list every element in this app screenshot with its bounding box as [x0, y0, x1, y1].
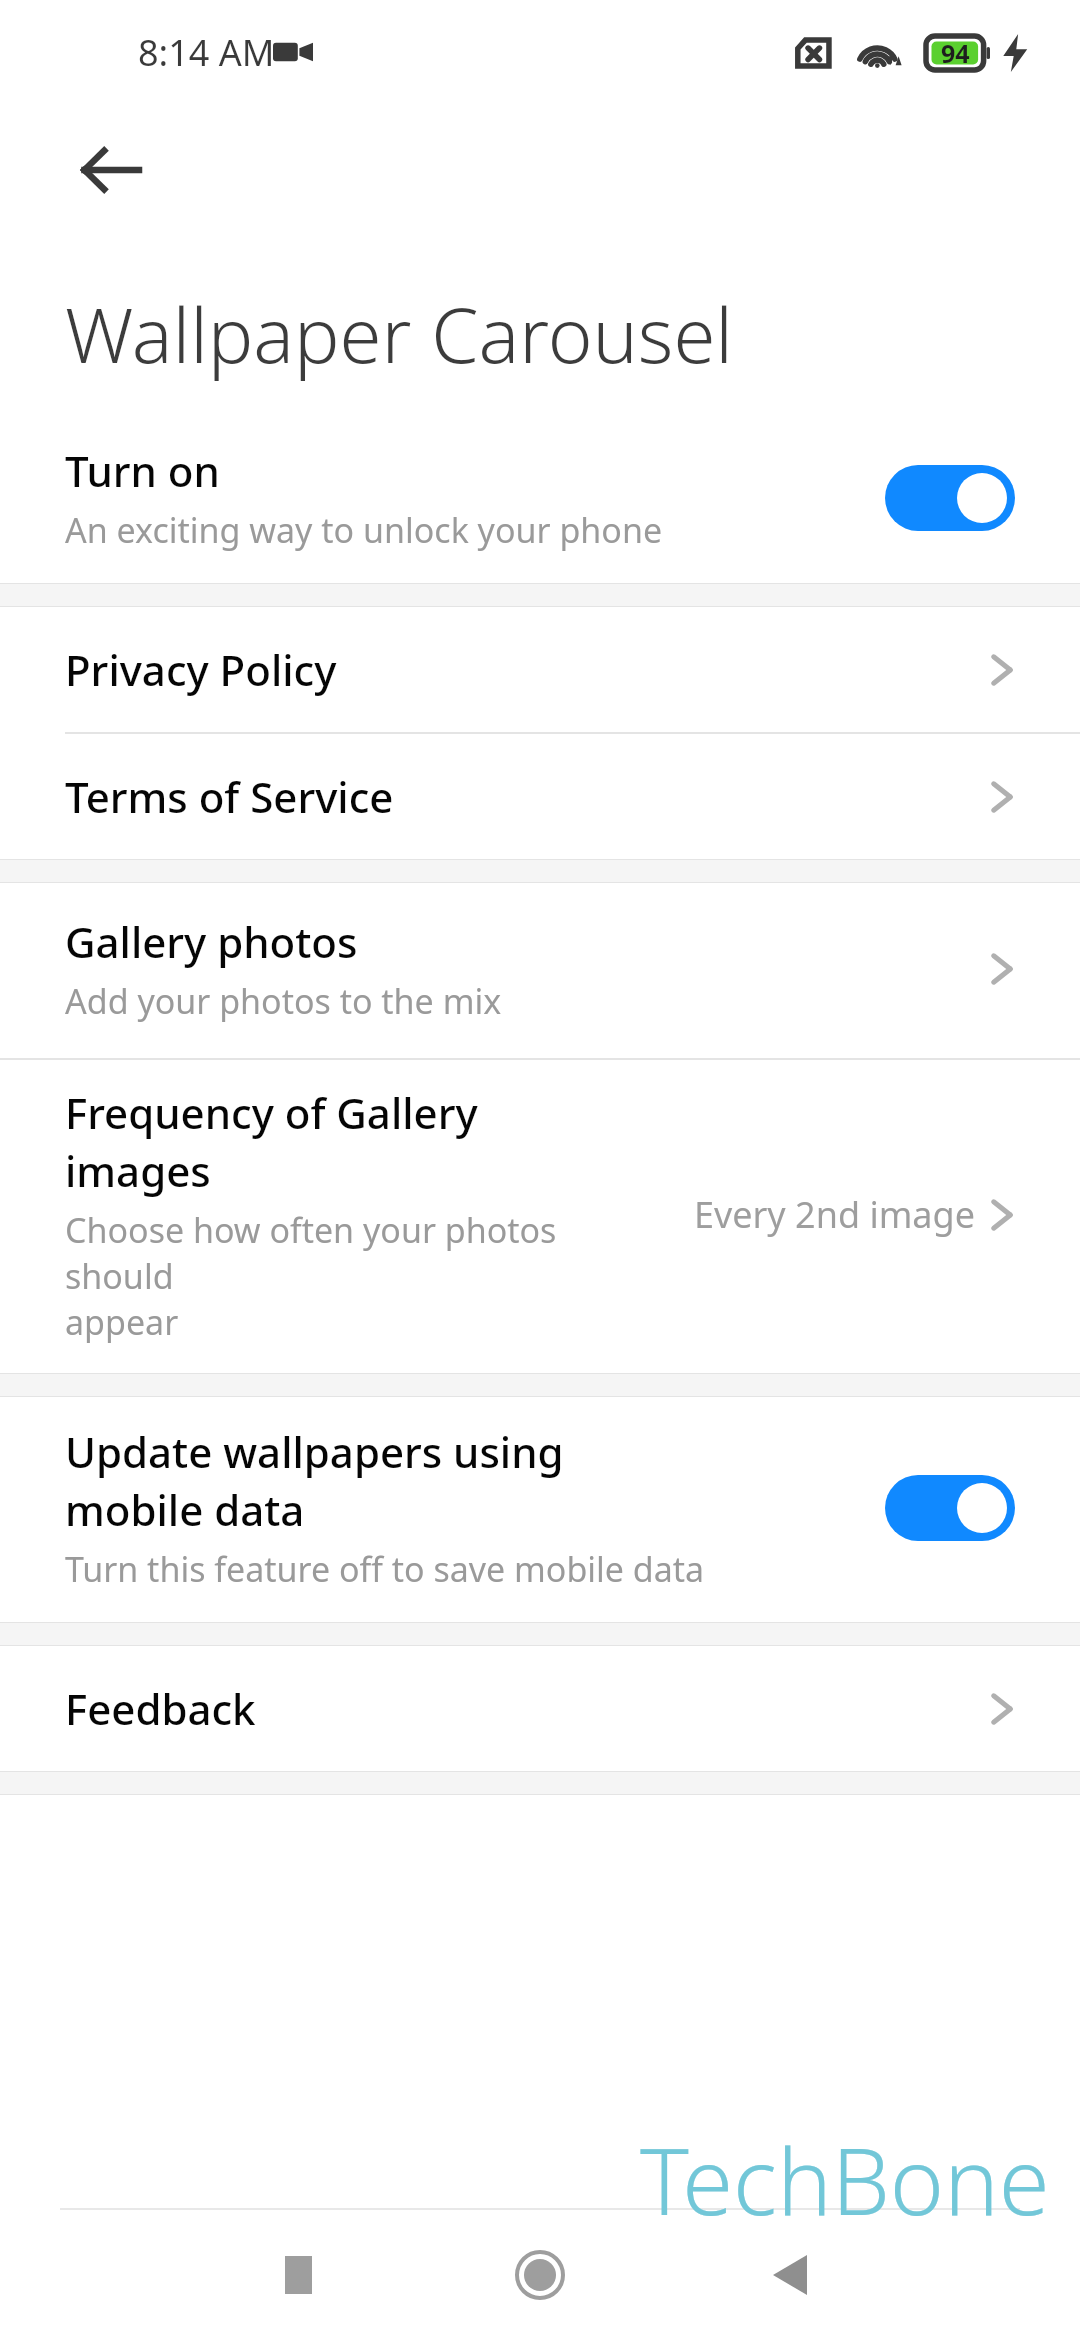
staticText: Privacy Policy [65, 641, 989, 698]
staticText: Feedback [65, 1680, 989, 1737]
staticText: Turn on [65, 442, 220, 499]
button[interactable]: Frequency of Gallery images [0, 1060, 1080, 1373]
button[interactable]: Feedback [0, 1646, 1080, 1771]
button[interactable]: Toggle [885, 465, 1015, 531]
staticText: Every 2nd image [693, 1190, 975, 1239]
button[interactable]: Gallery photos [0, 883, 1080, 1058]
staticText: Frequency of Gallery images [65, 1084, 478, 1199]
button[interactable]: Home [495, 2230, 585, 2320]
button[interactable]: Turn on [0, 420, 1080, 583]
staticText: Update wallpapers using mobile data [65, 1423, 564, 1538]
staticText: An exciting way to unlock your phone [65, 507, 663, 553]
staticText: TechBone [640, 2117, 1050, 2242]
staticText: Terms of Service [65, 768, 989, 825]
button[interactable]: Update wallpapers using mobile data [0, 1397, 1080, 1622]
button[interactable]: Back [750, 2235, 830, 2315]
staticText: Wallpaper Carousel [65, 282, 733, 386]
staticText: 94 [941, 36, 970, 70]
button[interactable]: Back [62, 122, 158, 218]
button[interactable]: Terms of Service [0, 734, 1080, 859]
button[interactable]: Privacy Policy [0, 607, 1080, 732]
button[interactable]: Toggle [885, 1475, 1015, 1541]
staticText: Turn this feature off to save mobile dat… [65, 1546, 705, 1592]
staticText: Add your photos to the mix [65, 978, 502, 1024]
staticText: Gallery photos [65, 913, 358, 970]
staticText: 8:14 AM [138, 28, 275, 77]
staticText: Choose how often your photos should appe… [65, 1207, 673, 1345]
button[interactable]: Recent apps [258, 2235, 338, 2315]
